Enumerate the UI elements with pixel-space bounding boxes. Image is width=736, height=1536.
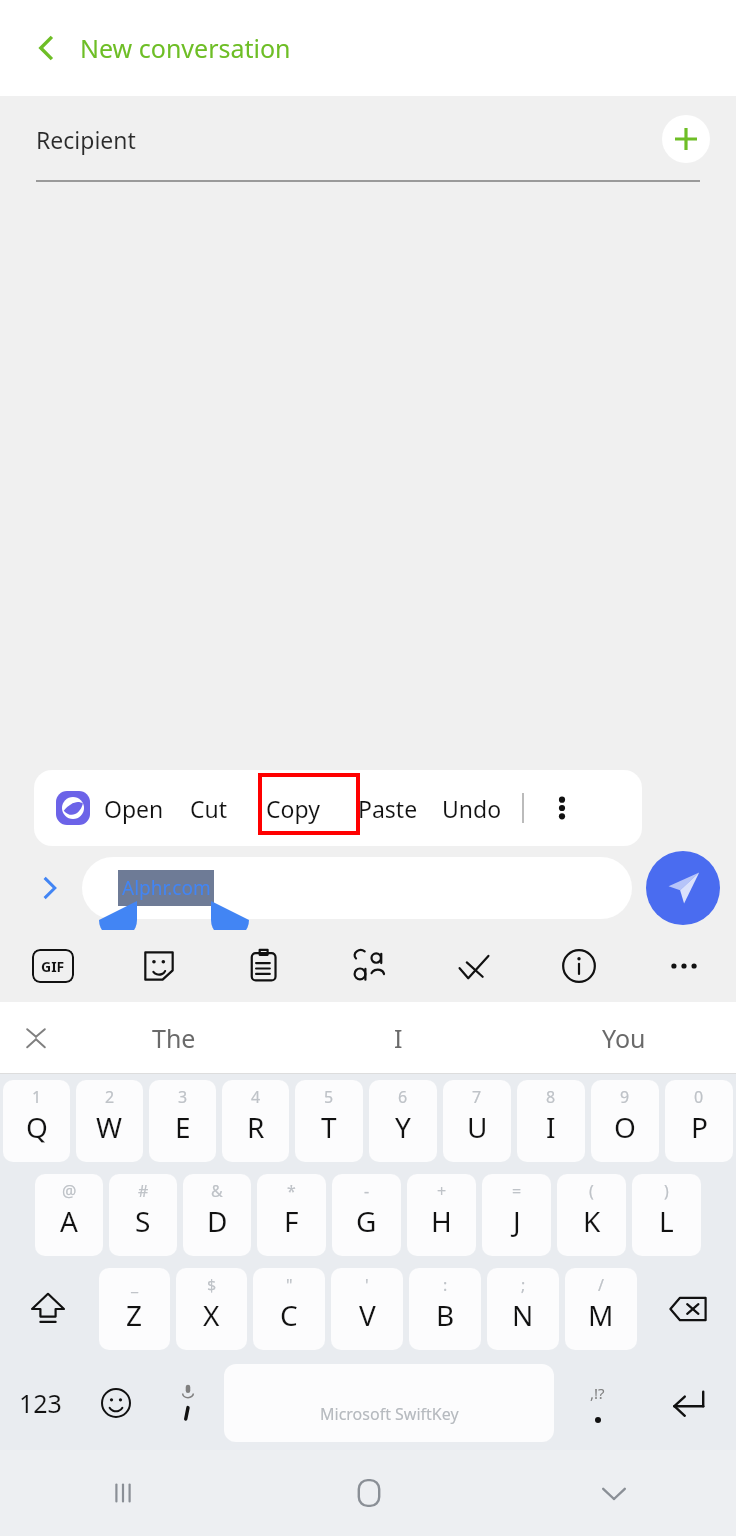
button[interactable]: 8 [517,1080,585,1162]
button[interactable]: 3 [149,1080,216,1162]
staticText: 9 [620,1086,630,1108]
button[interactable]: Add recipient [662,115,710,163]
button[interactable]: * [257,1174,326,1256]
staticText: GIF [41,957,65,976]
staticText: _ [131,1274,139,1296]
staticText: X [203,1296,220,1334]
button[interactable]: Hide keyboard [491,1450,736,1536]
button[interactable]: @ [35,1174,103,1256]
staticText: Open [104,793,164,824]
button[interactable]: More options [542,788,582,828]
button[interactable]: 7 [443,1080,511,1162]
staticText: / [598,1274,604,1296]
staticText: G [356,1202,377,1240]
staticText: R [247,1108,265,1146]
staticText: O [614,1108,636,1146]
button[interactable]: Backspace [640,1262,736,1356]
button[interactable]: 123 [0,1356,80,1450]
button[interactable]: & [183,1174,251,1256]
button[interactable]: + [407,1174,476,1256]
staticText: N [512,1296,534,1334]
staticText: ( [589,1180,594,1202]
staticText: 123 [19,1386,62,1420]
button[interactable]: 4 [222,1080,289,1162]
staticText: K [583,1202,601,1240]
staticText: W [96,1108,123,1146]
button[interactable]: Collapse [12,1014,60,1062]
staticText: 6 [398,1086,408,1108]
button[interactable]: Undo [442,785,502,832]
button[interactable]: $ [176,1268,247,1350]
button[interactable]: 9 [591,1080,659,1162]
button[interactable]: You [511,1002,736,1074]
staticText: & [211,1180,223,1202]
button[interactable]: Clipboard [211,930,316,1002]
button[interactable]: 0 [665,1080,733,1162]
staticText: ) [664,1180,669,1202]
button[interactable]: _ [99,1268,170,1350]
button[interactable]: Open [104,785,164,832]
button[interactable]: Info [526,930,631,1002]
button[interactable]: Cut [190,785,228,832]
button[interactable]: Translate [316,930,421,1002]
button[interactable]: Expand [30,868,70,908]
button[interactable]: 1 [3,1080,70,1162]
staticText: Z [126,1296,143,1334]
button[interactable]: Period [554,1356,640,1450]
staticText: I [546,1108,556,1146]
button[interactable]: 6 [369,1080,437,1162]
button[interactable]: 2 [76,1080,143,1162]
staticText: New conversation [80,31,291,65]
staticText: Undo [442,793,502,824]
staticText: ' [365,1274,369,1296]
staticText: M [588,1296,614,1334]
button[interactable]: Paste [358,785,418,832]
staticText: Microsoft SwiftKey [320,1403,459,1425]
button[interactable]: Send [646,851,720,925]
button[interactable]: ' [331,1268,403,1350]
staticText: S [135,1202,151,1240]
button[interactable]: Sticker [106,930,211,1002]
button[interactable]: Open in browser [56,791,90,825]
button[interactable]: The [62,1002,286,1074]
button[interactable]: - [332,1174,401,1256]
staticText: P [691,1108,708,1146]
button[interactable]: Emoji [80,1356,152,1450]
button[interactable]: # [109,1174,177,1256]
button[interactable]: 5 [295,1080,363,1162]
button[interactable]: ( [557,1174,626,1256]
button[interactable]: = [482,1174,551,1256]
staticText: 4 [251,1086,261,1108]
button[interactable]: Back [20,22,72,74]
staticText: Q [26,1108,48,1146]
button[interactable]: I [286,1002,511,1074]
button[interactable]: " [253,1268,325,1350]
button[interactable]: Shift [0,1262,96,1356]
staticText: F [284,1202,299,1240]
button[interactable]: Space [224,1364,554,1442]
button[interactable]: GIF [0,930,106,1002]
staticText: H [431,1202,452,1240]
button[interactable]: Home [246,1450,491,1536]
button[interactable]: Recent apps [0,1450,246,1536]
staticText: Copy [266,793,320,824]
staticText: @ [62,1180,77,1202]
staticText: $ [207,1274,217,1296]
staticText: T [321,1108,337,1146]
button[interactable]: ; [487,1268,559,1350]
button[interactable]: Alphr.com [82,857,632,919]
staticText: + [437,1180,447,1202]
button[interactable]: Enter [640,1356,736,1450]
button[interactable]: : [409,1268,481,1350]
staticText: 2 [105,1086,115,1108]
staticText: - [364,1180,370,1202]
button[interactable]: Comma and voice input [152,1356,224,1450]
staticText: 7 [472,1086,482,1108]
button[interactable]: Copy [248,785,338,832]
staticText: D [207,1202,228,1240]
button[interactable]: More [631,930,736,1002]
button[interactable]: / [565,1268,637,1350]
button[interactable]: ) [632,1174,701,1256]
button[interactable]: Handwriting [421,930,526,1002]
staticText: E [175,1108,191,1146]
